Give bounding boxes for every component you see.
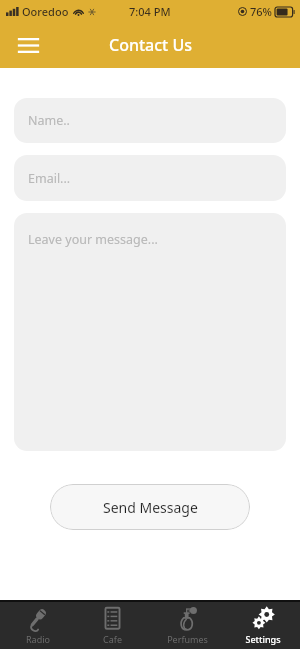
button[interactable]: Leave your message... xyxy=(14,213,286,451)
staticText: Email... xyxy=(28,170,71,187)
staticText: 76% xyxy=(250,4,272,19)
button[interactable]: Email... xyxy=(14,155,286,201)
button[interactable]: Open navigation menu xyxy=(10,27,46,63)
button[interactable]: Cafe xyxy=(75,602,150,649)
staticText: Contact Us xyxy=(109,34,192,56)
staticText: Cafe xyxy=(103,633,122,645)
staticText: Radio xyxy=(26,633,50,645)
button[interactable]: Radio xyxy=(0,602,75,649)
staticText: Perfumes xyxy=(167,633,208,645)
staticText: Send Message xyxy=(103,498,198,517)
staticText: Leave your message... xyxy=(28,231,158,248)
staticText: Settings xyxy=(245,633,281,645)
button[interactable]: Name.. xyxy=(14,98,286,143)
button[interactable]: Send Message xyxy=(50,484,250,530)
staticText: Name.. xyxy=(28,112,70,129)
staticText: 7:04 PM xyxy=(129,4,171,19)
button[interactable]: Perfumes xyxy=(150,602,225,649)
staticText: Ooredoo xyxy=(22,4,69,19)
button[interactable]: Settings xyxy=(225,602,300,649)
